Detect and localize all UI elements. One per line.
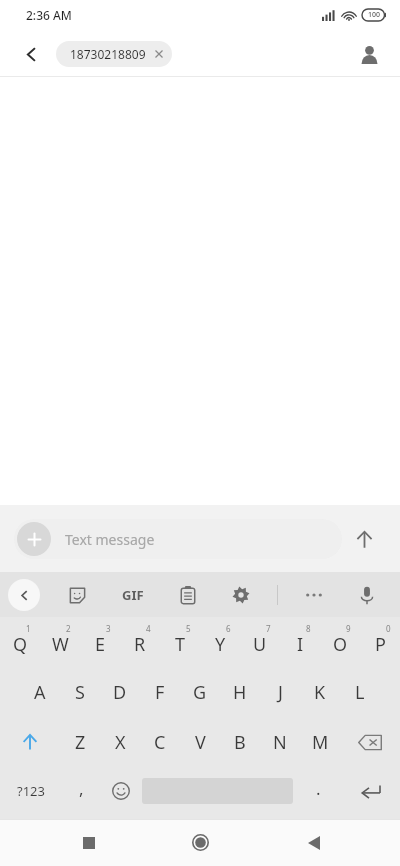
- button[interactable]: Attach: [17, 522, 51, 556]
- staticText: M: [312, 730, 329, 755]
- staticText: 0: [386, 623, 391, 634]
- button[interactable]: 7: [240, 617, 280, 667]
- button[interactable]: Clipboard: [171, 578, 205, 612]
- button[interactable]: 2: [40, 617, 80, 667]
- staticText: 2:36 AM: [26, 7, 72, 23]
- staticText: H: [233, 680, 247, 705]
- button[interactable]: More options: [297, 578, 331, 612]
- staticText: G: [193, 680, 207, 705]
- staticText: 3: [106, 623, 111, 634]
- button[interactable]: Contact details: [352, 37, 386, 71]
- button[interactable]: 9: [320, 617, 360, 667]
- staticText: Y: [215, 632, 226, 657]
- staticText: 4: [146, 623, 151, 634]
- staticText: F: [155, 680, 165, 705]
- staticText: 9: [346, 623, 351, 634]
- button[interactable]: Send: [342, 517, 386, 561]
- staticText: .: [316, 777, 321, 800]
- staticText: O: [333, 632, 348, 657]
- button[interactable]: F: [140, 667, 180, 717]
- staticText: E: [95, 632, 106, 657]
- button[interactable]: B: [220, 717, 260, 767]
- staticText: A: [34, 680, 46, 705]
- button[interactable]: 4: [120, 617, 160, 667]
- button[interactable]: Voice input: [350, 578, 384, 612]
- button[interactable]: 0: [360, 617, 400, 667]
- button[interactable]: Z: [60, 717, 100, 767]
- button[interactable]: Stickers: [60, 578, 94, 612]
- staticText: R: [134, 632, 146, 657]
- staticText: 5: [186, 623, 191, 634]
- staticText: J: [278, 680, 283, 705]
- staticText: 2: [66, 623, 71, 634]
- button[interactable]: ?123: [0, 767, 62, 815]
- staticText: 18730218809: [70, 46, 146, 62]
- button[interactable]: Back: [267, 819, 400, 866]
- button[interactable]: M: [300, 717, 340, 767]
- staticText: Z: [75, 730, 86, 755]
- staticText: S: [75, 680, 85, 705]
- button[interactable]: Enter: [342, 767, 400, 815]
- button[interactable]: 1: [0, 617, 40, 667]
- button[interactable]: 3: [80, 617, 120, 667]
- staticText: L: [355, 680, 365, 705]
- staticText: 8: [306, 623, 311, 634]
- staticText: 100: [368, 10, 381, 20]
- staticText: Text message: [65, 530, 155, 549]
- staticText: I: [297, 632, 304, 657]
- button[interactable]: Emoji: [101, 767, 140, 815]
- button[interactable]: N: [260, 717, 300, 767]
- button[interactable]: L: [340, 667, 380, 717]
- button[interactable]: Backspace: [340, 717, 400, 767]
- button[interactable]: V: [180, 717, 220, 767]
- button[interactable]: ,: [62, 767, 101, 815]
- button[interactable]: 6: [200, 617, 240, 667]
- button[interactable]: Recent apps: [0, 819, 134, 866]
- staticText: ?123: [17, 782, 45, 800]
- staticText: K: [314, 680, 326, 705]
- button[interactable]: 18730218809: [56, 41, 172, 67]
- staticText: P: [375, 632, 386, 657]
- button[interactable]: Home: [134, 819, 267, 866]
- button[interactable]: GIF: [114, 576, 152, 614]
- button[interactable]: Attach: [14, 519, 342, 559]
- button[interactable]: Shift: [0, 717, 60, 767]
- staticText: B: [234, 730, 246, 755]
- staticText: 7: [266, 623, 271, 634]
- button[interactable]: G: [180, 667, 220, 717]
- staticText: N: [273, 730, 287, 755]
- button[interactable]: Settings: [224, 578, 258, 612]
- button[interactable]: C: [140, 717, 180, 767]
- button[interactable]: Collapse toolbar: [8, 579, 40, 611]
- button[interactable]: H: [220, 667, 260, 717]
- button[interactable]: J: [260, 667, 300, 717]
- staticText: W: [52, 632, 69, 657]
- button[interactable]: K: [300, 667, 340, 717]
- button[interactable]: X: [100, 717, 140, 767]
- staticText: D: [113, 680, 127, 705]
- staticText: 6: [226, 623, 231, 634]
- staticText: V: [195, 730, 206, 755]
- staticText: GIF: [122, 586, 144, 604]
- button[interactable]: D: [100, 667, 140, 717]
- staticText: Q: [13, 632, 28, 657]
- button[interactable]: 5: [160, 617, 200, 667]
- staticText: ,: [79, 777, 84, 800]
- button[interactable]: S: [60, 667, 100, 717]
- button[interactable]: 8: [280, 617, 320, 667]
- button[interactable]: Back: [14, 37, 48, 71]
- staticText: T: [175, 632, 186, 657]
- staticText: U: [253, 632, 267, 657]
- staticText: C: [154, 730, 166, 755]
- staticText: 1: [26, 623, 31, 634]
- button[interactable]: .: [295, 767, 342, 815]
- staticText: X: [115, 730, 126, 755]
- button[interactable]: A: [20, 667, 60, 717]
